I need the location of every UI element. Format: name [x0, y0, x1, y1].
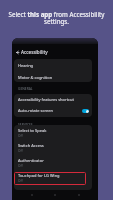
- staticText: Hearing: [18, 63, 34, 68]
- button[interactable]: Touchpad for LG Wing: [14, 170, 92, 185]
- button[interactable]: Home: [51, 191, 59, 199]
- staticText: Touchpad for LG Wing: [18, 173, 60, 178]
- staticText: Switch Access: [18, 143, 44, 148]
- staticText: Off: [18, 134, 23, 138]
- staticText: Off: [18, 149, 23, 153]
- staticText: Off: [18, 164, 23, 168]
- button[interactable]: Accessibility features shortcut: [14, 94, 92, 105]
- staticText: Motor & cognition: [18, 75, 53, 80]
- button[interactable]: Authenticator: [14, 155, 92, 170]
- staticText: Accessibility: [21, 49, 48, 55]
- button[interactable]: Hearing: [14, 59, 92, 71]
- staticText: Select this app from Accessibility setti…: [5, 10, 108, 26]
- button[interactable]: Back: [75, 191, 83, 199]
- staticText: Accessibility features shortcut: [18, 97, 74, 102]
- button[interactable]: Switch Access: [14, 140, 92, 155]
- staticText: SERVICES: [18, 122, 33, 126]
- staticText: Select to Speak: [18, 128, 47, 133]
- staticText: GENERAL: [18, 86, 33, 90]
- button[interactable]: Back: [13, 48, 21, 56]
- staticText: Authenticator: [18, 158, 44, 163]
- button[interactable]: Motor & cognition: [14, 71, 92, 82]
- staticText: Auto-rotate screen: [18, 108, 82, 113]
- button[interactable]: Auto-rotate screen: [14, 105, 92, 116]
- staticText: Off: [18, 179, 23, 183]
- button[interactable]: Select to Speak: [14, 125, 92, 140]
- button[interactable]: Recents: [28, 191, 36, 199]
